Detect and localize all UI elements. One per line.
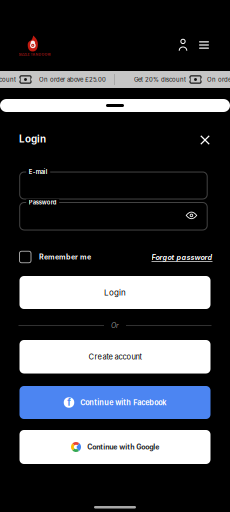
staticText: SIZZLE TANDOORI <box>18 52 50 57</box>
staticText: Continue with Facebook <box>80 398 166 407</box>
button[interactable]: f <box>19 386 210 419</box>
staticText: E-mail <box>29 168 48 175</box>
staticText: Password <box>29 199 57 206</box>
staticText: On orde <box>207 76 230 83</box>
staticText: On order above £25.00 <box>39 76 106 83</box>
staticText: Continue with Google <box>87 443 159 451</box>
staticText: Get 20% discount <box>134 76 186 83</box>
button[interactable]: Menu <box>195 36 213 54</box>
button[interactable]: Login <box>19 276 210 309</box>
staticText: Or <box>111 321 119 330</box>
button[interactable]: Continue with Google <box>19 430 210 464</box>
button[interactable]: Close <box>196 131 214 149</box>
staticText: Forgot password <box>151 253 212 262</box>
staticText: Login <box>19 133 46 145</box>
button[interactable]: Forgot password <box>149 252 212 263</box>
button[interactable]: Show password <box>186 212 197 218</box>
staticText: count <box>0 76 16 83</box>
button[interactable]: Account <box>174 36 192 54</box>
staticText: Remember me <box>39 253 91 261</box>
staticText: f <box>67 397 71 408</box>
button[interactable]: Create account <box>19 340 210 373</box>
staticText: Create account <box>88 352 141 361</box>
button[interactable]: Remember me <box>19 251 111 263</box>
staticText: Login <box>104 288 126 297</box>
